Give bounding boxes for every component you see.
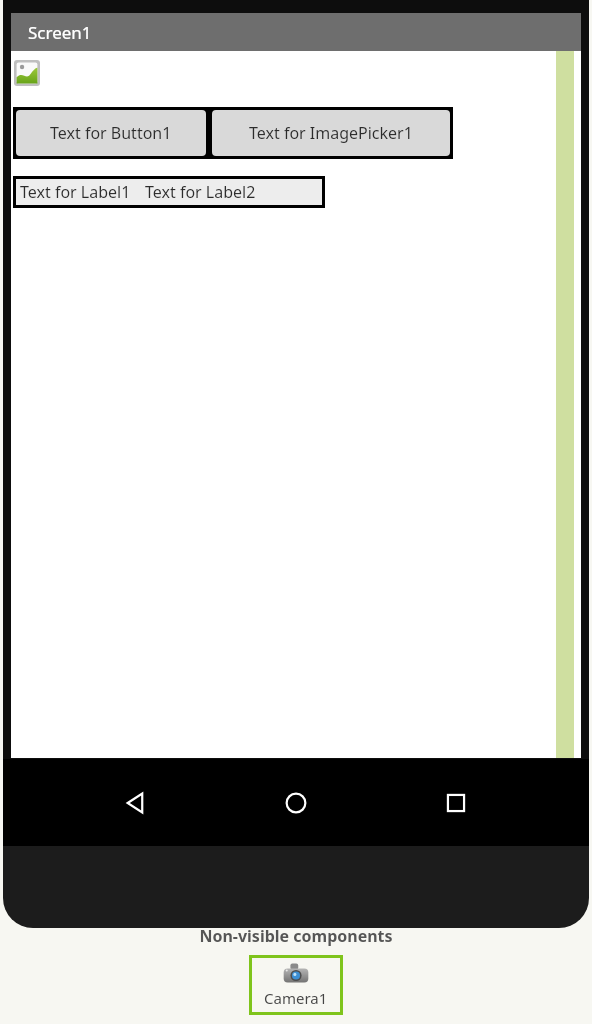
staticText: Non-visible components: [199, 925, 393, 947]
staticText: Text for Button1: [50, 122, 172, 144]
button[interactable]: Text for Button1: [16, 110, 206, 156]
button[interactable]: Text for Button1: [13, 107, 453, 159]
button[interactable]: Back: [109, 776, 163, 830]
button[interactable]: Text for Label1: [20, 181, 131, 203]
button[interactable]: Image1: [14, 60, 40, 86]
button[interactable]: Screen1: [11, 13, 581, 51]
staticText: Camera1: [264, 988, 328, 1008]
button[interactable]: Text for Label2: [145, 181, 256, 203]
button[interactable]: Recents: [429, 776, 483, 830]
button[interactable]: Camera1: [249, 955, 343, 1015]
staticText: Text for ImagePicker1: [249, 122, 413, 144]
button[interactable]: Text for Label1: [13, 176, 325, 208]
button[interactable]: Home: [269, 776, 323, 830]
button[interactable]: Text for ImagePicker1: [212, 110, 450, 156]
staticText: Screen1: [28, 21, 92, 44]
